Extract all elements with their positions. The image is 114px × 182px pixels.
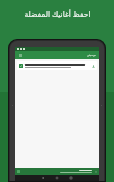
button[interactable]: Recents bbox=[69, 176, 73, 180]
button[interactable]: Menu bbox=[18, 53, 23, 58]
button[interactable]: Download bbox=[17, 61, 97, 70]
button[interactable]: Expand bbox=[15, 168, 99, 175]
button[interactable]: Download bbox=[91, 64, 95, 68]
staticText: احفظ أغانيك المفضلة bbox=[24, 9, 91, 19]
button[interactable]: Home bbox=[55, 176, 59, 180]
button[interactable]: Expand bbox=[94, 170, 97, 173]
staticText: موسيقى bbox=[87, 54, 96, 57]
button[interactable]: Back bbox=[41, 176, 45, 180]
